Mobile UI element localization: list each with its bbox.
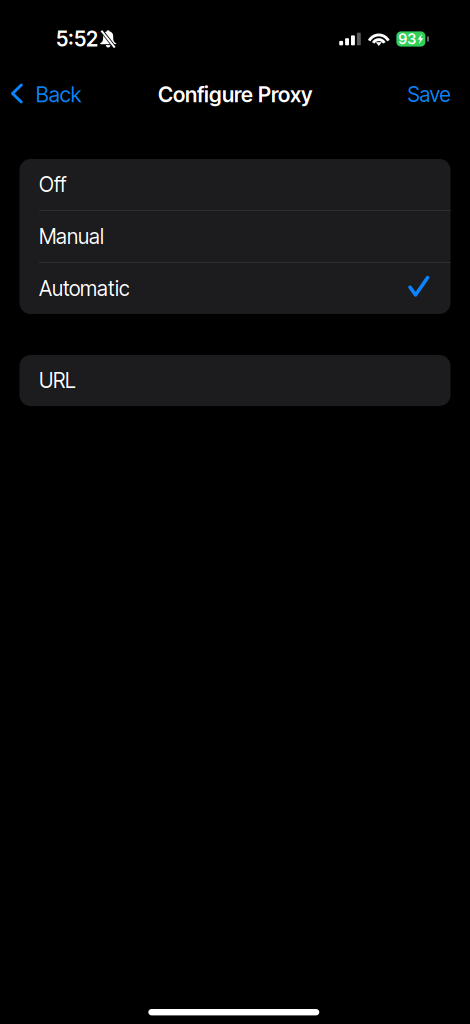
staticText: Save <box>407 82 450 107</box>
button[interactable]: Save <box>393 78 470 111</box>
staticText: Manual <box>39 224 104 249</box>
button[interactable]: Automatic <box>19 263 450 314</box>
staticText: Back <box>36 82 82 107</box>
staticText: URL <box>39 368 76 393</box>
staticText: Off <box>39 172 66 197</box>
button[interactable]: Off <box>19 159 450 210</box>
button[interactable]: Back <box>0 78 92 111</box>
staticText: Automatic <box>39 276 130 301</box>
staticText: Configure Proxy <box>158 82 312 107</box>
button[interactable]: Manual <box>19 211 450 262</box>
button[interactable]: URL <box>0 355 470 406</box>
staticText: 93 <box>398 30 416 48</box>
staticText: 5:52 <box>56 26 98 51</box>
